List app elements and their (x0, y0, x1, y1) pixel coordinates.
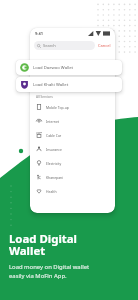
button[interactable]: Mobile Top-up (30, 100, 115, 114)
staticText: Mobile Top-up (46, 105, 69, 110)
staticText: Electricity (46, 161, 62, 166)
staticText: Load Khalti Wallet (33, 82, 69, 88)
staticText: Health (46, 189, 57, 194)
button[interactable]: Search (34, 41, 95, 50)
staticText: Internet (46, 119, 60, 124)
staticText: Cable Car (46, 133, 62, 138)
staticText: Load Daewoo Wallet (33, 65, 74, 71)
button[interactable]: Khanepani (30, 170, 115, 184)
staticText: Cancel (98, 43, 111, 48)
staticText: Load Digital Wallet (9, 231, 77, 259)
staticText: Search (43, 43, 56, 48)
button[interactable]: Health (30, 184, 115, 198)
staticText: Khanepani (46, 175, 64, 180)
staticText: Insurance (46, 147, 62, 152)
button[interactable]: Insurance (30, 142, 115, 156)
staticText: All Services (36, 95, 53, 99)
button[interactable]: Cable Car (30, 128, 115, 142)
button[interactable]: Cancel (98, 43, 111, 48)
staticText: 9:41 (35, 31, 43, 36)
button[interactable]: Internet (30, 114, 115, 128)
button[interactable]: Load Daewoo Wallet (16, 60, 122, 75)
button[interactable]: Electricity (30, 156, 115, 170)
button[interactable]: Load Khalti Wallet (16, 77, 122, 92)
staticText: Load money on Digital wallet easily via … (9, 263, 90, 280)
